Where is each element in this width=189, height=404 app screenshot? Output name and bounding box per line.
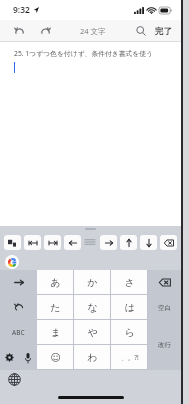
staticText: や [87, 326, 98, 339]
button[interactable]: Voice input [18, 345, 37, 370]
button[interactable]: Backspace [160, 235, 177, 250]
button[interactable]: Move right [100, 235, 117, 250]
staticText: ☺ [50, 352, 61, 364]
button[interactable]: た [37, 295, 74, 320]
staticText: 、。?! [121, 353, 139, 362]
button[interactable]: 改行 [148, 320, 181, 370]
button[interactable]: か [74, 270, 111, 295]
button[interactable]: Select mode [4, 235, 21, 250]
button[interactable]: Undo [0, 295, 37, 320]
button[interactable]: Delete [148, 270, 181, 295]
button[interactable]: Search [132, 22, 150, 40]
staticText: な [87, 301, 98, 314]
button[interactable]: や [74, 320, 111, 345]
button[interactable]: 完了 [155, 26, 172, 37]
staticText: 25. 1つずつ色を付けず、条件付き書式を使う [14, 49, 154, 58]
button[interactable]: Expand left [24, 235, 41, 250]
staticText: あ [50, 276, 61, 289]
button[interactable]: な [74, 295, 111, 320]
button[interactable]: Move left [64, 235, 81, 250]
staticText: 改行 [158, 341, 171, 349]
button[interactable]: ☺ [37, 345, 74, 370]
button[interactable]: Change keyboard language [8, 373, 21, 386]
staticText: 空白 [158, 304, 171, 312]
staticText: た [50, 301, 61, 314]
staticText: さ [124, 276, 135, 289]
staticText: 9:32 [13, 4, 30, 16]
button[interactable]: Move down [140, 235, 157, 250]
button[interactable]: 空白 [148, 295, 181, 320]
button[interactable]: は [111, 295, 148, 320]
staticText: か [87, 276, 98, 289]
button[interactable]: Redo [36, 22, 54, 40]
staticText: ら [124, 326, 135, 339]
button[interactable]: あ [37, 270, 74, 295]
button[interactable]: Expand right [44, 235, 61, 250]
staticText: 24 文字 [80, 26, 106, 36]
button[interactable]: ら [111, 320, 148, 345]
button[interactable]: わ [74, 345, 111, 370]
button[interactable]: Settings [0, 345, 18, 370]
staticText: わ [87, 351, 98, 364]
button[interactable]: Google [5, 255, 19, 269]
staticText: ABC [12, 328, 25, 337]
button[interactable]: ABC [0, 320, 37, 345]
staticText: は [124, 301, 135, 314]
button[interactable]: Move up [120, 235, 137, 250]
button[interactable]: ま [37, 320, 74, 345]
button[interactable]: さ [111, 270, 148, 295]
staticText: ま [50, 326, 61, 339]
button[interactable]: Undo [10, 22, 28, 40]
button[interactable]: 、。?! [111, 345, 148, 370]
button[interactable]: Convert [0, 270, 37, 295]
staticText: 完了 [155, 26, 172, 37]
